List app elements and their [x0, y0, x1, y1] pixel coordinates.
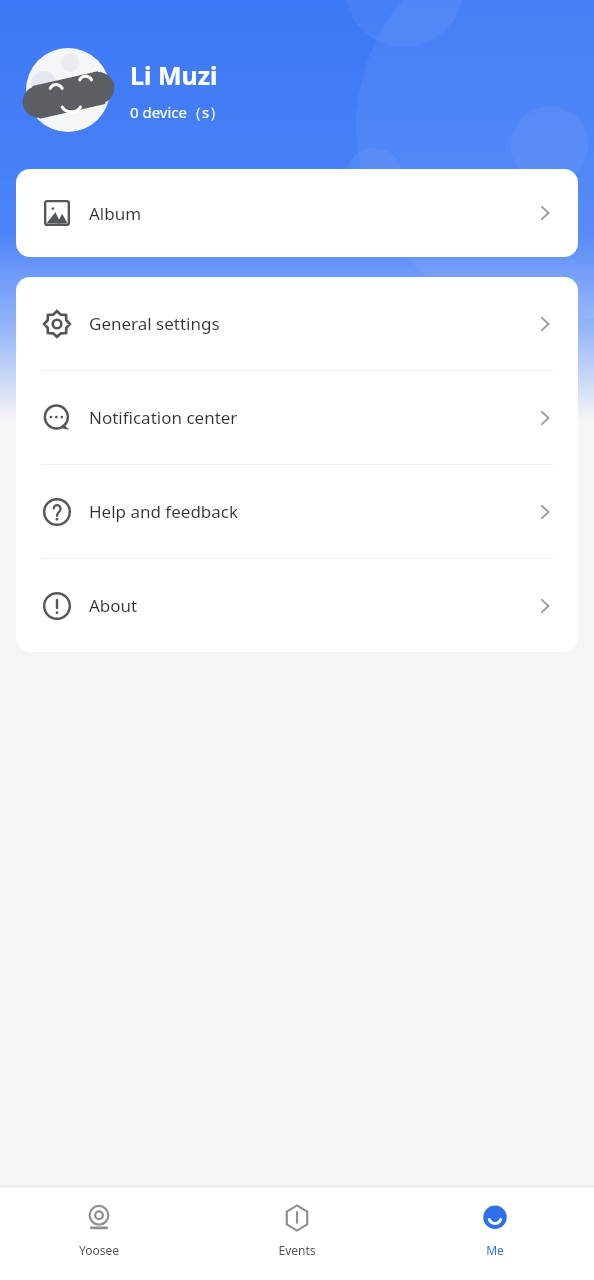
button[interactable]: Yoosee	[0, 1187, 198, 1280]
button[interactable]: Li Muzi	[26, 48, 574, 132]
button[interactable]: Help and feedback	[16, 465, 578, 558]
staticText: Me	[486, 1242, 504, 1258]
button[interactable]: Album	[16, 169, 578, 257]
staticText: Help and feedback	[89, 500, 239, 523]
staticText: Li Muzi	[130, 58, 218, 92]
staticText: Yoosee	[79, 1242, 119, 1258]
staticText: Events	[278, 1242, 316, 1258]
staticText: Notification center	[89, 406, 238, 429]
staticText: Album	[89, 202, 142, 225]
staticText: About	[89, 594, 138, 617]
staticText: General settings	[89, 312, 220, 335]
button[interactable]: Me	[396, 1187, 594, 1280]
staticText: 0 device（s）	[130, 102, 225, 122]
button[interactable]: Notification center	[16, 371, 578, 464]
button[interactable]: About	[16, 559, 578, 652]
button[interactable]: Events	[198, 1187, 396, 1280]
button[interactable]: General settings	[16, 277, 578, 370]
